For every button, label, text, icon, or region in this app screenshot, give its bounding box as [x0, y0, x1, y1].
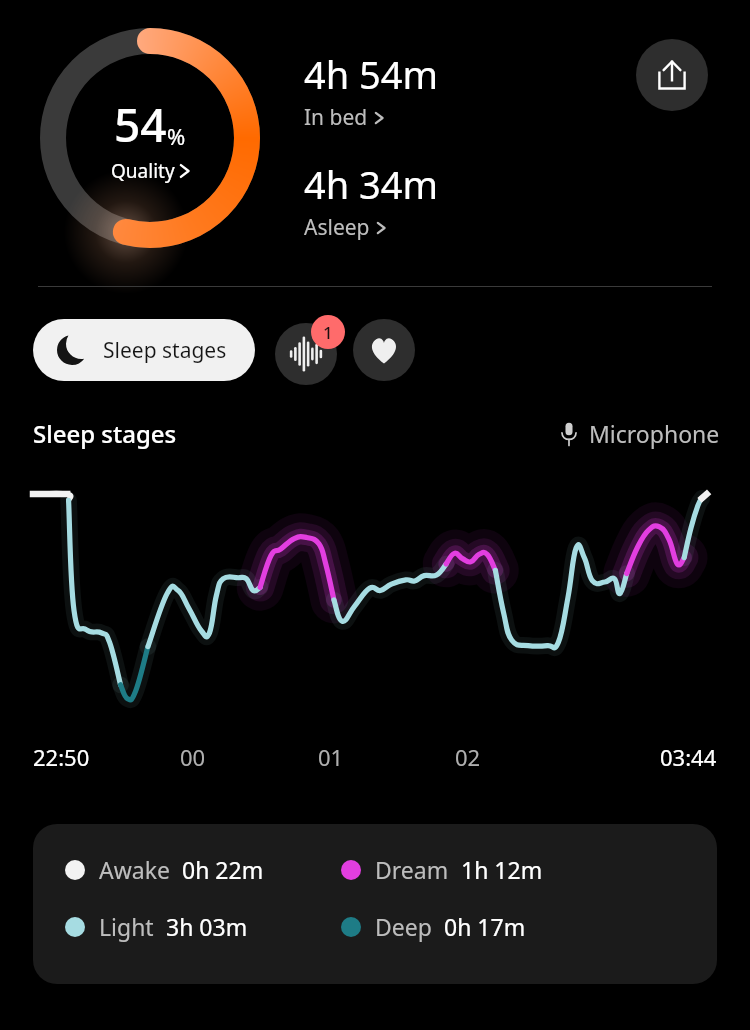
staticText: Sleep stages	[33, 417, 177, 450]
button[interactable]: Share	[636, 39, 708, 111]
button[interactable]: 54	[36, 24, 264, 252]
staticText: 3h 03m	[166, 911, 248, 942]
staticText: Awake	[99, 854, 170, 885]
button[interactable]: Asleep	[304, 213, 385, 242]
staticText: Quality	[111, 158, 175, 184]
staticText: 02	[455, 742, 481, 772]
staticText: Deep	[375, 911, 432, 942]
staticText: %	[167, 121, 186, 151]
button[interactable]	[0, 472, 750, 742]
button[interactable]: Awake	[33, 824, 717, 984]
staticText: In bed	[304, 103, 368, 132]
staticText: 00	[180, 742, 206, 772]
staticText: 0h 17m	[444, 911, 526, 942]
staticText: 0h 22m	[182, 854, 264, 885]
staticText: Sleep stages	[103, 336, 227, 365]
staticText: 1	[323, 321, 333, 344]
button[interactable]: Heart rate	[353, 319, 415, 381]
staticText: 54	[114, 93, 167, 156]
button[interactable]: Sleep recordings	[275, 323, 337, 385]
staticText: 1h 12m	[461, 854, 543, 885]
staticText: 01	[318, 742, 344, 772]
staticText: Light	[99, 911, 154, 942]
staticText: Microphone	[589, 418, 720, 449]
staticText: 4h 34m	[304, 158, 439, 210]
staticText: 22:50	[33, 742, 90, 772]
button[interactable]: Microphone	[561, 418, 720, 449]
staticText: Dream	[375, 854, 449, 885]
staticText: Asleep	[304, 213, 370, 242]
staticText: 03:44	[660, 742, 717, 772]
button[interactable]: In bed	[304, 103, 383, 132]
staticText: 4h 54m	[304, 48, 439, 100]
button[interactable]: Sleep stages	[33, 319, 255, 381]
